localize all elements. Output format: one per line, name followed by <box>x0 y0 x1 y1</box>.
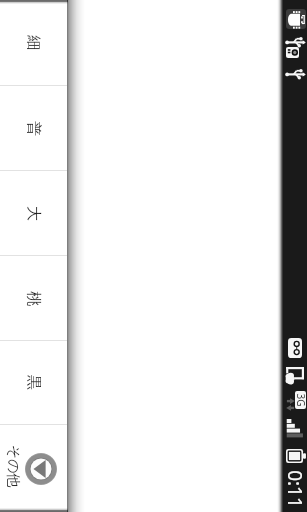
staticText: 細 <box>24 35 43 50</box>
staticText: 桃 <box>24 291 43 306</box>
staticText: 3G <box>294 385 307 415</box>
staticText: その他 <box>4 436 22 496</box>
staticText: 黒 <box>24 375 43 390</box>
button[interactable]: Collapse panel <box>25 453 57 485</box>
button[interactable]: その他 <box>0 425 67 512</box>
button[interactable]: 普 <box>0 86 67 170</box>
staticText: 普 <box>24 121 43 136</box>
button[interactable]: 細 <box>0 0 67 85</box>
staticText: 大 <box>24 206 43 221</box>
button[interactable]: 大 <box>0 171 67 255</box>
staticText: 0:11 <box>282 469 307 509</box>
button[interactable]: 黒 <box>0 341 67 424</box>
button[interactable]: 桃 <box>0 256 67 340</box>
